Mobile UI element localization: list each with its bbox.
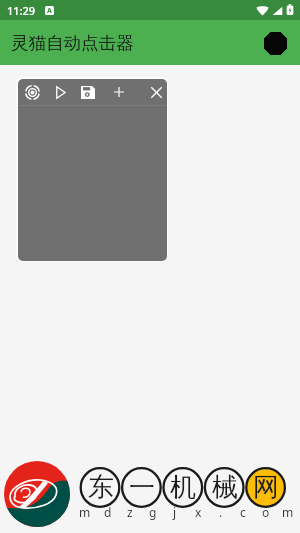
- staticText: 机: [170, 471, 196, 504]
- staticText: m: [79, 504, 91, 520]
- staticText: 11:29: [7, 3, 36, 18]
- staticText: x: [195, 504, 202, 520]
- button[interactable]: Settings: [258, 26, 292, 60]
- button[interactable]: Save: [75, 79, 101, 105]
- staticText: .: [219, 504, 223, 520]
- button[interactable]: Add: [106, 79, 132, 105]
- button[interactable]: Close: [143, 79, 167, 105]
- staticText: z: [127, 504, 133, 520]
- staticText: A: [47, 6, 52, 15]
- staticText: 灵猫自动点击器: [11, 32, 134, 54]
- staticText: 械: [212, 471, 238, 504]
- staticText: j: [173, 504, 177, 520]
- staticText: c: [240, 504, 246, 520]
- staticText: 一: [129, 471, 155, 504]
- staticText: g: [149, 504, 157, 520]
- staticText: 网: [253, 471, 279, 504]
- staticText: m: [282, 504, 294, 520]
- button[interactable]: Record: [19, 79, 45, 105]
- staticText: 东: [88, 471, 114, 504]
- button[interactable]: Play: [47, 79, 73, 105]
- staticText: o: [262, 504, 270, 520]
- staticText: d: [104, 504, 112, 520]
